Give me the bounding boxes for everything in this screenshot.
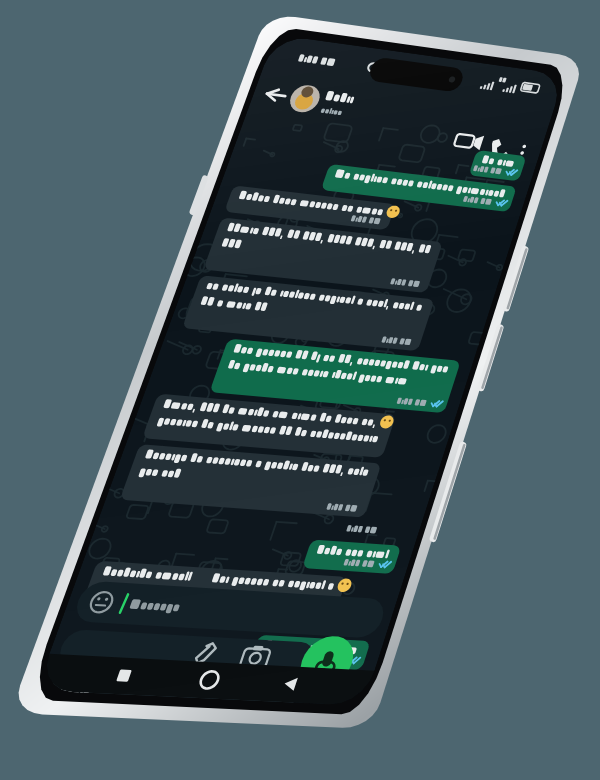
button[interactable]: Record voice message	[286, 668, 334, 716]
button[interactable]: Voice call	[508, 78, 538, 108]
button[interactable]: Message input	[25, 625, 245, 665]
button[interactable]: Video call	[468, 70, 502, 104]
button[interactable]: More options	[543, 82, 565, 104]
button[interactable]: Attach	[218, 658, 248, 688]
button[interactable]: Gabii, online	[300, 45, 430, 85]
button[interactable]: Back	[270, 50, 300, 80]
other: WhatsApp chat with Gabii	[0, 0, 600, 780]
